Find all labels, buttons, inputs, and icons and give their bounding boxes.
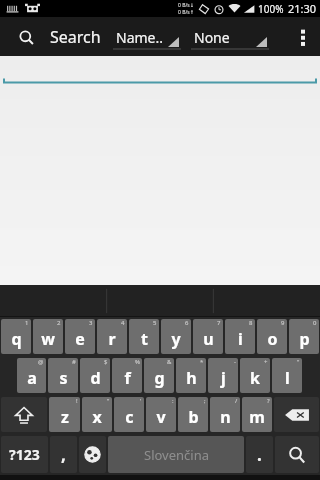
button[interactable]: # — [48, 358, 78, 393]
button[interactable]: , — [50, 436, 77, 473]
button[interactable]: Search — [12, 23, 40, 51]
button[interactable]: . — [246, 436, 273, 473]
staticText: c — [125, 406, 134, 428]
button[interactable]: - — [208, 358, 238, 393]
staticText: 7 — [217, 319, 221, 327]
button[interactable]: Search — [275, 436, 319, 473]
staticText: " — [297, 358, 300, 366]
staticText: 1 — [25, 319, 29, 327]
button[interactable]: Name.. — [113, 24, 181, 50]
button[interactable]: Search — [50, 26, 101, 48]
staticText: : — [172, 397, 174, 405]
staticText: n — [220, 406, 231, 428]
staticText: @ — [38, 358, 44, 366]
button[interactable]: + — [240, 358, 270, 393]
button[interactable]: ' — [114, 397, 144, 432]
button[interactable]: Shift — [1, 397, 47, 432]
button[interactable]: ! — [49, 397, 80, 432]
staticText: * — [200, 358, 204, 366]
button[interactable]: More options — [290, 17, 316, 56]
button[interactable]: " — [272, 358, 302, 393]
staticText: 0 B/s↓ — [178, 2, 194, 9]
button[interactable]: ?123 — [1, 436, 48, 473]
button[interactable]: 2 — [33, 319, 63, 354]
staticText: l — [285, 367, 290, 389]
staticText: Name.. — [116, 28, 163, 47]
button[interactable]: Delete — [274, 397, 319, 432]
staticText: ; — [204, 397, 206, 405]
staticText: 8 — [249, 319, 253, 327]
staticText: # — [72, 358, 76, 366]
staticText: . — [257, 443, 262, 466]
button[interactable]: 0 — [289, 319, 319, 354]
staticText: f — [124, 367, 131, 389]
button[interactable]: ; — [178, 397, 208, 432]
staticText: + — [264, 358, 268, 366]
button[interactable]: 8 — [225, 319, 255, 354]
button[interactable]: 7 — [193, 319, 223, 354]
staticText: % — [135, 358, 140, 366]
button[interactable]: Change language — [79, 436, 106, 473]
staticText: & — [167, 358, 172, 366]
staticText: d — [90, 367, 101, 389]
staticText: y — [171, 328, 181, 350]
staticText: v — [156, 406, 166, 428]
button[interactable] — [3, 56, 317, 84]
button[interactable]: 9 — [257, 319, 287, 354]
button[interactable]: : — [146, 397, 176, 432]
staticText: q — [11, 328, 22, 350]
staticText: z — [61, 406, 69, 428]
staticText: k — [250, 367, 260, 389]
staticText: " — [107, 397, 110, 405]
staticText: i — [238, 328, 243, 350]
staticText: w — [41, 328, 55, 350]
staticText: t — [141, 328, 148, 350]
staticText: $ — [104, 358, 108, 366]
staticText: 4 — [121, 319, 125, 327]
staticText: ? — [267, 397, 270, 405]
button[interactable]: / — [210, 397, 240, 432]
staticText: 6 — [185, 319, 189, 327]
staticText: / — [235, 397, 238, 405]
button[interactable]: % — [112, 358, 142, 393]
staticText: b — [188, 406, 199, 428]
staticText: h — [186, 367, 197, 389]
staticText: a — [27, 367, 37, 389]
button[interactable]: & — [144, 358, 174, 393]
staticText: 0 B/s↑ — [178, 9, 194, 16]
button[interactable]: $ — [80, 358, 110, 393]
button[interactable]: 1 — [1, 319, 31, 354]
staticText: e — [75, 328, 85, 350]
staticText: g — [154, 367, 165, 389]
staticText: 0 — [313, 319, 317, 327]
staticText: 100% — [258, 2, 284, 16]
staticText: 2 — [57, 319, 61, 327]
button[interactable]: 5 — [129, 319, 159, 354]
staticText: s — [59, 367, 68, 389]
staticText: 5 — [153, 319, 157, 327]
staticText: - — [234, 358, 236, 366]
staticText: Slovenčina — [144, 446, 209, 464]
button[interactable]: Slovenčina — [108, 436, 244, 473]
button[interactable]: " — [82, 397, 112, 432]
staticText: r — [108, 328, 116, 350]
staticText: ' — [140, 397, 142, 405]
staticText: j — [221, 367, 226, 389]
staticText: u — [203, 328, 214, 350]
button[interactable]: 6 — [161, 319, 191, 354]
button[interactable]: 3 — [65, 319, 95, 354]
button[interactable]: @ — [17, 358, 46, 393]
button[interactable]: ? — [242, 397, 272, 432]
staticText: m — [249, 406, 265, 428]
staticText: p — [299, 328, 310, 350]
staticText: o — [267, 328, 278, 350]
button[interactable]: * — [176, 358, 206, 393]
staticText: , — [61, 443, 66, 466]
staticText: ! — [76, 397, 78, 405]
staticText: x — [92, 406, 102, 428]
button[interactable]: 4 — [97, 319, 127, 354]
staticText: 3 — [89, 319, 93, 327]
button[interactable]: None — [191, 24, 269, 50]
staticText: None — [194, 28, 230, 47]
staticText: 9 — [281, 319, 285, 327]
